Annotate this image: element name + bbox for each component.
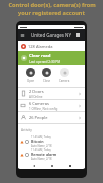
staticText: United Garages NY (31, 32, 72, 38)
button[interactable]: Camera (60, 68, 69, 77)
button[interactable]: 26 People (18, 112, 85, 123)
staticText: Activity (21, 128, 32, 132)
staticText: Close (43, 79, 51, 83)
staticText: your registered account (18, 9, 85, 17)
button[interactable]: Clear road (18, 51, 85, 65)
staticText: Open (27, 79, 35, 83)
staticText: 11:45 AM, Today (31, 135, 51, 139)
button[interactable]: Open (26, 68, 35, 77)
staticText: 6 Cameras (29, 101, 49, 106)
staticText: 26 People (29, 115, 48, 120)
staticText: 128 Alameda (28, 44, 53, 49)
button[interactable]: Home (49, 163, 54, 168)
staticText: Remote alarm (31, 152, 57, 157)
staticText: All Online (29, 95, 43, 99)
button[interactable]: Close (42, 68, 51, 77)
staticText: Auto Name, 2/18 (31, 157, 52, 161)
button[interactable]: United Garages NY (18, 29, 85, 41)
staticText: Camera (59, 79, 70, 83)
button[interactable]: 11:45 AM, Today (18, 135, 85, 148)
button[interactable]: Recents (67, 163, 72, 168)
staticText: Last opened 2:30 PM (29, 60, 61, 64)
staticText: 1 Offline, Not config (29, 107, 58, 111)
staticText: 2 Doors (29, 89, 44, 94)
staticText: Auto Name, 2/18 (31, 144, 52, 148)
staticText: Bitcoin (31, 139, 44, 144)
button[interactable]: 2 Doors (18, 88, 85, 99)
button[interactable]: 11:45 AM, Today (18, 148, 85, 161)
button[interactable]: Back (31, 163, 36, 168)
button[interactable]: 128 Alameda (18, 41, 85, 51)
staticText: Control door(s), camera(s) from (8, 1, 96, 9)
button[interactable]: 6 Cameras (18, 100, 85, 111)
staticText: Clear road (29, 53, 51, 59)
button[interactable]: Menu (20, 33, 25, 38)
staticText: 11:45 AM, Today (31, 148, 51, 152)
